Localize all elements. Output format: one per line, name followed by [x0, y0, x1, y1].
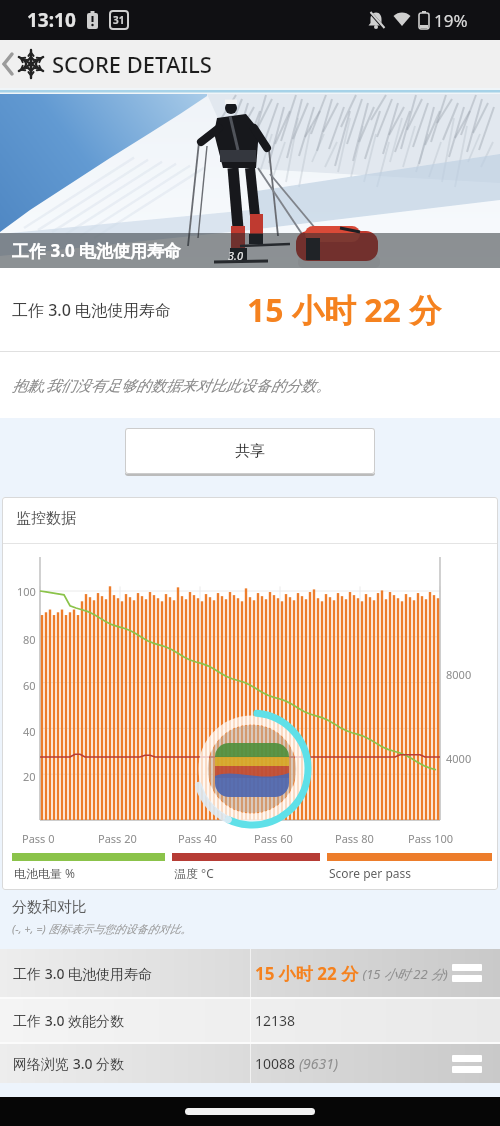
staticText: (-, +, =) 图标表示与您的设备的对比。 — [12, 921, 192, 936]
staticText: 网络浏览 3.0 分数 — [13, 1054, 125, 1073]
staticText: 4000 — [446, 751, 472, 766]
staticText: 10088 — [255, 1054, 299, 1073]
staticText: 80 — [23, 632, 36, 647]
staticText: 温度 °C — [174, 865, 214, 881]
staticText: 监控数据 — [16, 509, 76, 528]
staticText: (9631) — [299, 1054, 338, 1073]
button[interactable]: 共享 — [125, 428, 375, 474]
staticText: 工作 3.0 效能分数 — [13, 1011, 125, 1030]
staticText: 工作 3.0 电池使用寿命 — [13, 964, 153, 983]
button[interactable]: 网络浏览 3.0 分数 — [0, 1044, 500, 1083]
staticText: Score per pass — [329, 865, 412, 881]
staticText: 工作 3.0 电池使用寿命 — [12, 299, 171, 321]
staticText: (15 小时 22 分) — [359, 965, 448, 983]
staticText: Pass 60 — [254, 831, 293, 846]
staticText: Pass 0 — [22, 831, 55, 846]
staticText: Pass 20 — [98, 831, 137, 846]
staticText: 40 — [23, 724, 36, 739]
button[interactable]: 工作 3.0 电池使用寿命 — [0, 949, 500, 997]
staticText: 100 — [17, 584, 36, 599]
staticText: 8000 — [446, 667, 472, 682]
staticText: 60 — [23, 678, 36, 693]
button[interactable]: 工作 3.0 效能分数 — [0, 999, 500, 1042]
staticText: 15 小时 22 分 — [247, 288, 442, 332]
staticText: 31 — [113, 13, 125, 27]
staticText: Pass 80 — [335, 831, 374, 846]
staticText: 20 — [23, 769, 36, 784]
staticText: 工作 3.0 电池使用寿命 — [12, 239, 182, 262]
staticText: 12138 — [255, 1011, 296, 1030]
staticText: 共享 — [235, 442, 265, 461]
staticText: Pass 40 — [178, 831, 217, 846]
staticText: Pass 100 — [408, 831, 454, 846]
staticText: SCORE DETAILS — [52, 49, 212, 79]
staticText: 3.0 — [228, 248, 243, 263]
staticText: 13:10 — [27, 7, 76, 33]
staticText: 电池电量 % — [14, 865, 76, 881]
staticText: 抱歉,我们没有足够的数据来对比此设备的分数。 — [12, 375, 331, 395]
staticText: 15 小时 22 分 — [255, 962, 359, 985]
staticText: 分数和对比 — [12, 898, 87, 917]
staticText: 19% — [434, 9, 468, 32]
button[interactable] — [185, 1108, 315, 1115]
button[interactable] — [0, 40, 16, 88]
